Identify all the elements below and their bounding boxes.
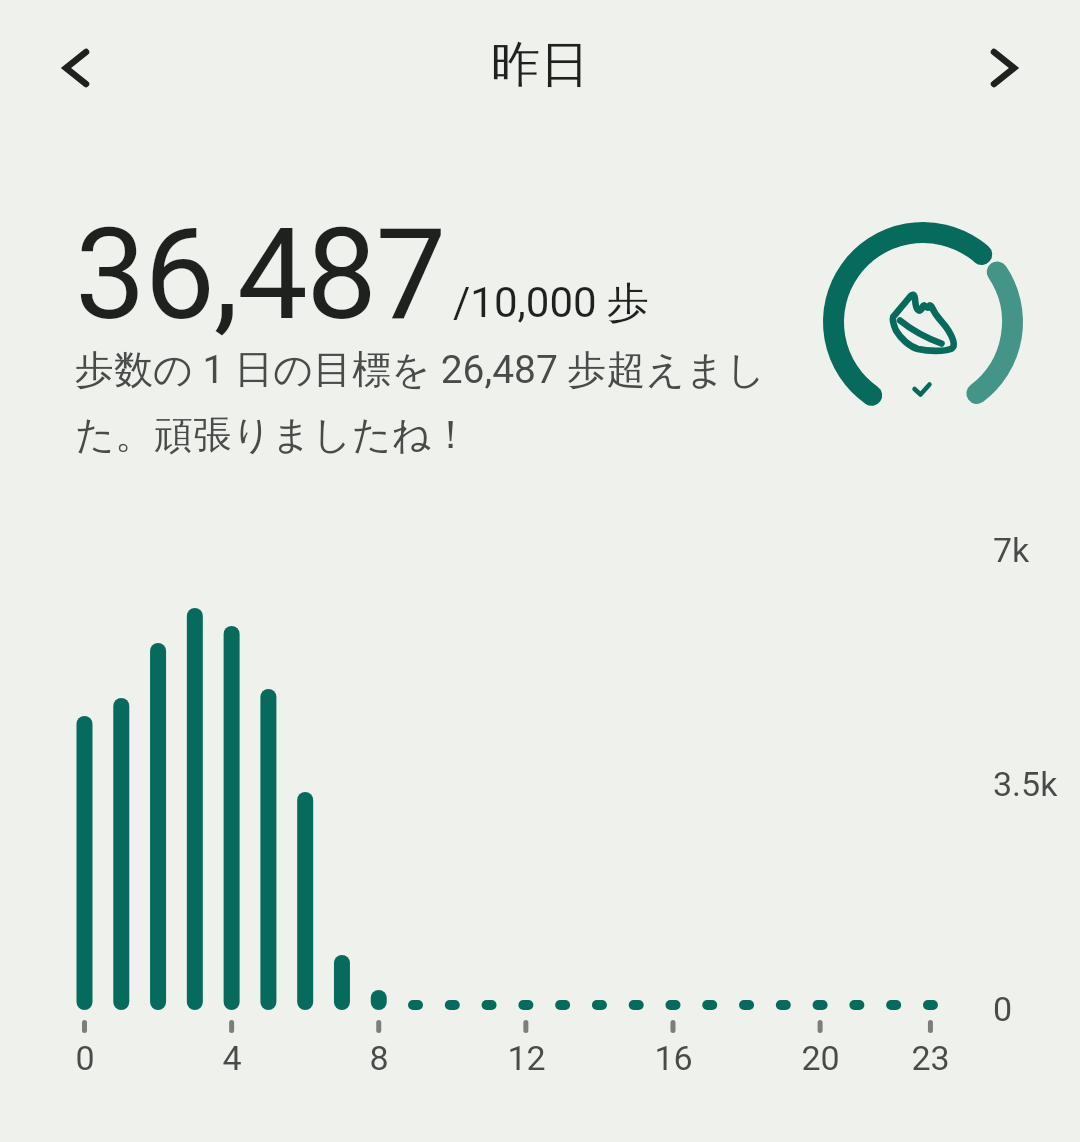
staticText: 歩数の 1 日の目標を 26,487 歩超えまし た。頑張りましたね！ (75, 345, 766, 460)
staticText: 昨日 (491, 34, 589, 96)
button[interactable] (48, 40, 104, 96)
staticText: 0 (993, 989, 1013, 1029)
staticText: 8 (369, 1038, 389, 1078)
staticText: 4 (222, 1038, 242, 1078)
staticText: 16 (654, 1038, 693, 1078)
button[interactable] (976, 40, 1032, 96)
staticText: 12 (507, 1038, 546, 1078)
staticText: 0 (75, 1038, 95, 1078)
staticText: 7k (993, 530, 1030, 570)
staticText: 3.5k (993, 764, 1058, 804)
staticText: 23 (911, 1038, 950, 1078)
staticText: 20 (801, 1038, 840, 1078)
staticText: /10,000 歩 (453, 277, 650, 330)
staticText: 36,487 (75, 201, 445, 349)
